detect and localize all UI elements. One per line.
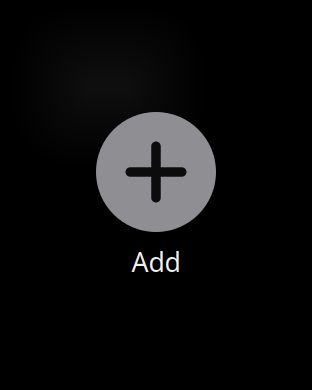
button[interactable]: Add xyxy=(96,112,216,279)
staticText: Add xyxy=(131,244,180,279)
